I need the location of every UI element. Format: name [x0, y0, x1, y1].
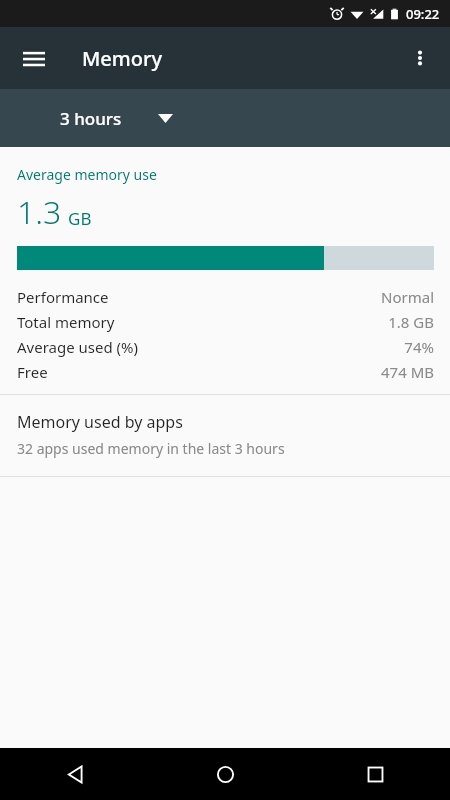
button[interactable]: Back: [0, 748, 150, 800]
button[interactable]: Recent apps: [300, 748, 450, 800]
staticText: GB: [68, 207, 92, 230]
staticText: 3 hours: [60, 107, 122, 130]
button[interactable]: Average memory use: [0, 147, 450, 394]
staticText: Average memory use: [17, 165, 157, 184]
staticText: 32 apps used memory in the last 3 hours: [17, 439, 285, 458]
staticText: Free: [17, 362, 48, 382]
staticText: Memory: [82, 45, 163, 72]
staticText: 09:22: [406, 5, 440, 23]
staticText: Memory used by apps: [17, 411, 183, 433]
staticText: 474 MB: [381, 362, 434, 382]
button[interactable]: More options: [396, 34, 444, 82]
button[interactable]: 3 hours: [60, 107, 173, 130]
button[interactable]: Home: [150, 748, 300, 800]
button[interactable]: Open navigation drawer: [10, 34, 58, 82]
button[interactable]: Memory used by apps: [0, 395, 450, 476]
staticText: Total memory: [17, 312, 115, 332]
staticText: 1.3: [17, 190, 62, 234]
staticText: 74%: [404, 337, 434, 357]
staticText: Normal: [381, 287, 434, 307]
staticText: Performance: [17, 287, 109, 307]
staticText: 1.8 GB: [388, 312, 434, 332]
staticText: Average used (%): [17, 337, 139, 357]
